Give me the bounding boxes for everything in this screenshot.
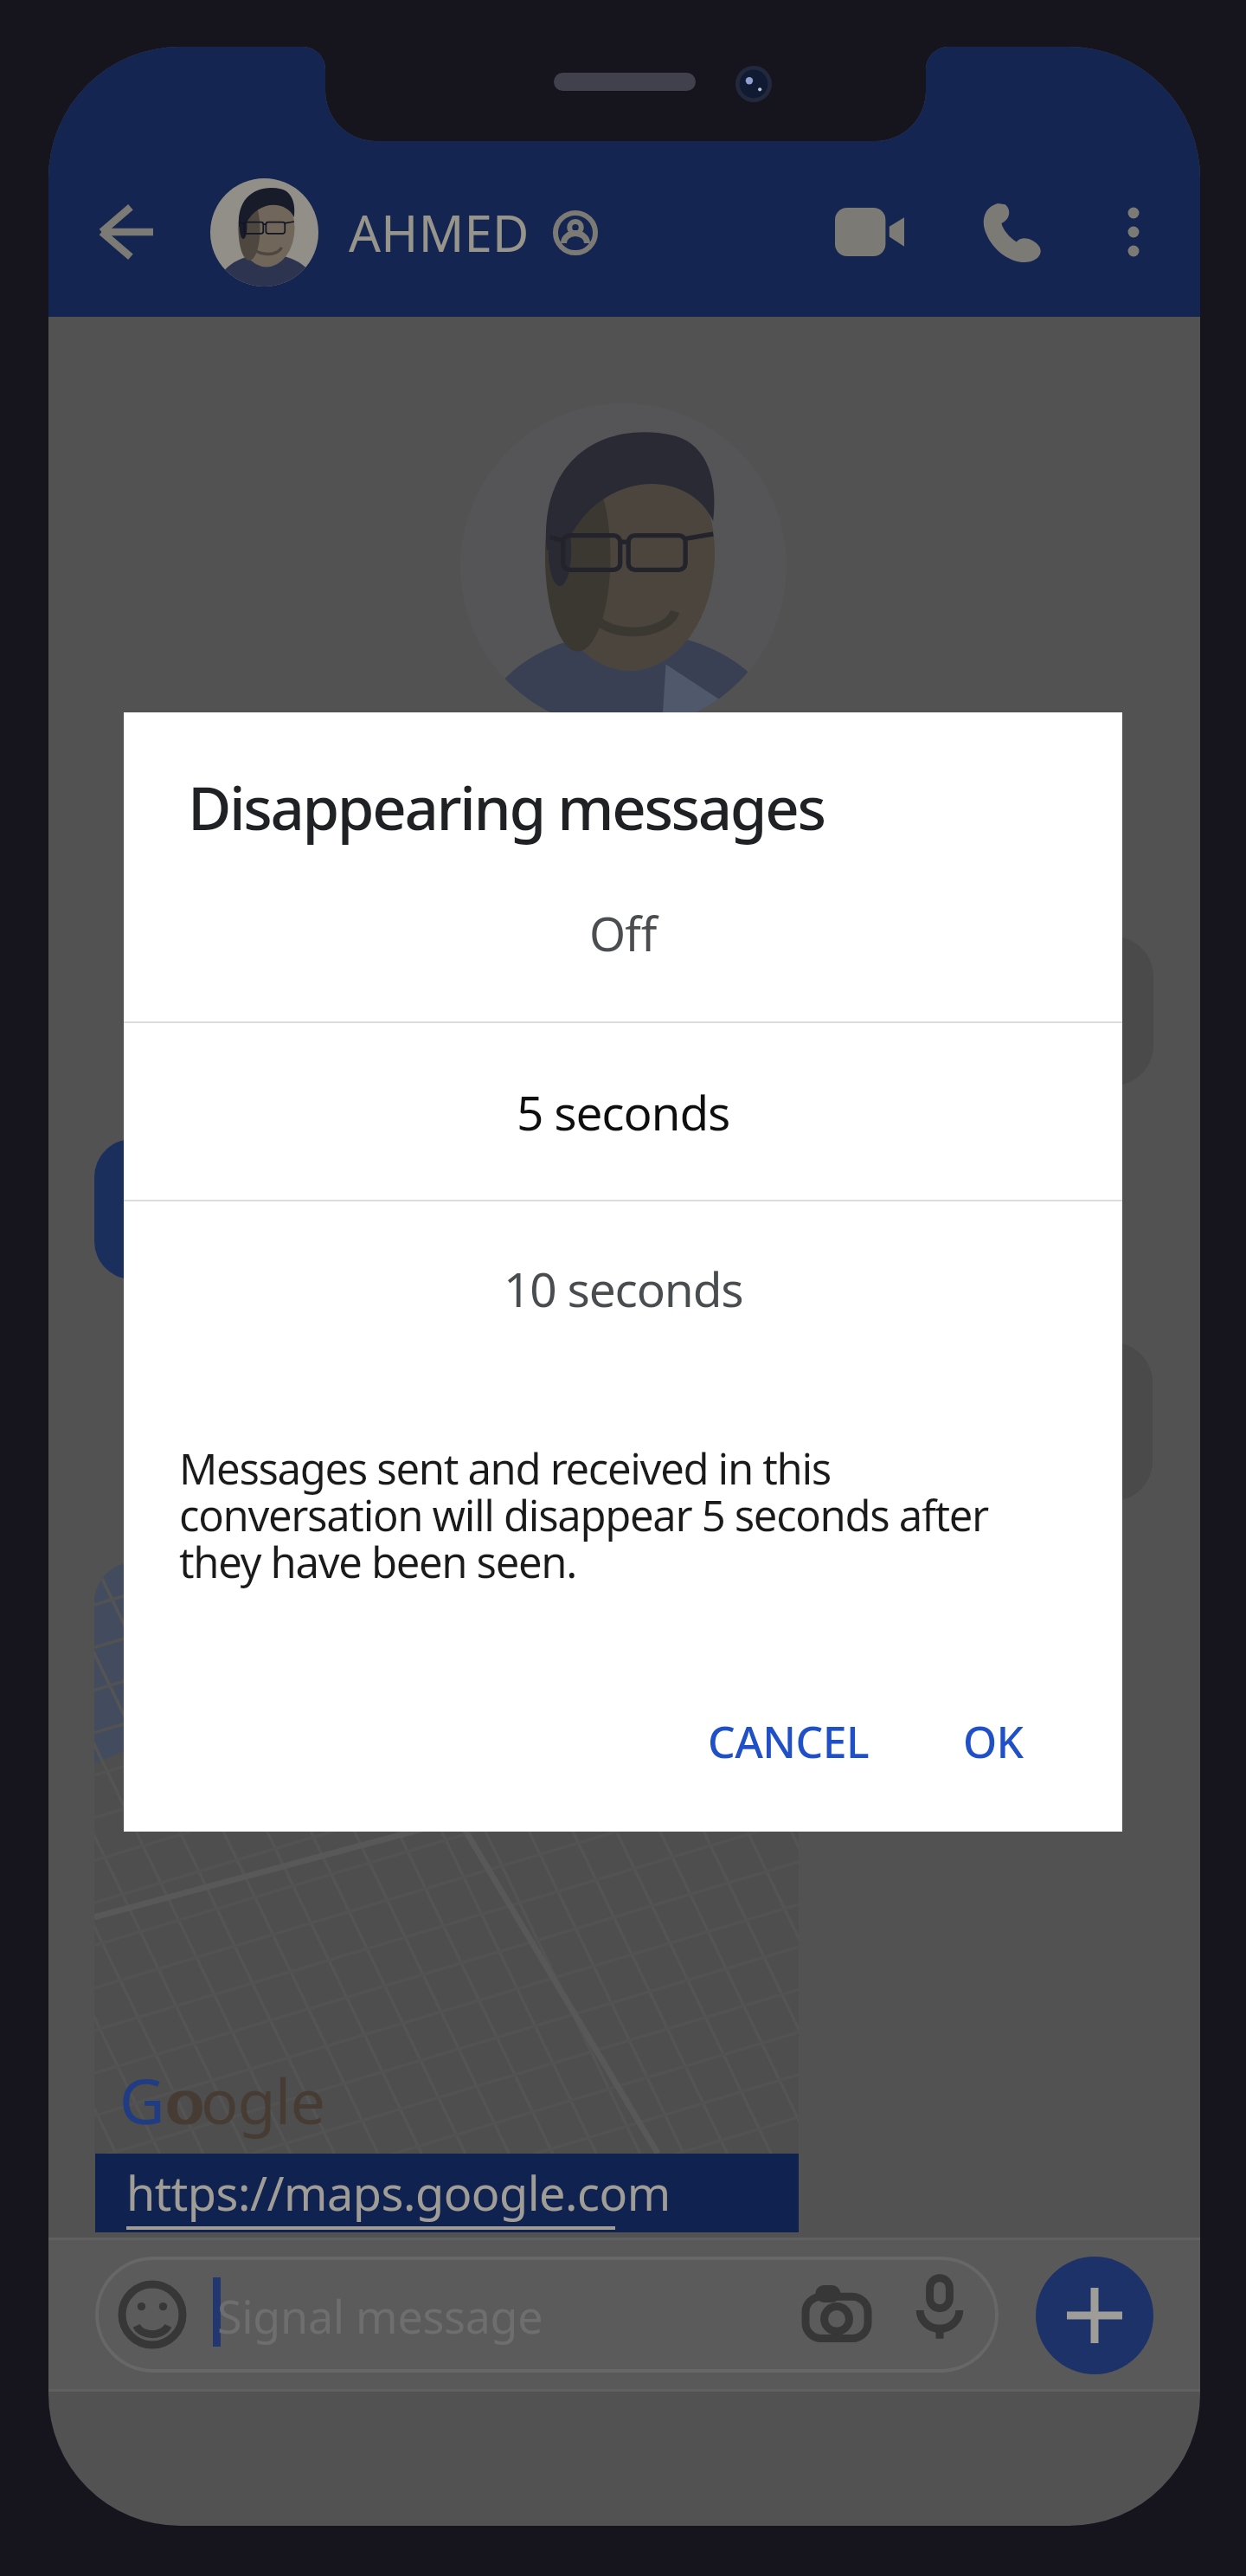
button[interactable]: Back bbox=[79, 184, 174, 280]
staticText: AHMED bbox=[349, 198, 530, 267]
staticText: G bbox=[119, 2058, 165, 2142]
button[interactable]: Add attachment bbox=[1036, 2257, 1153, 2374]
staticText: Messages sent and received in this conve… bbox=[179, 1439, 1023, 1591]
staticText: 5 seconds bbox=[517, 1079, 730, 1144]
staticText: https://maps.google.com bbox=[126, 2161, 671, 2225]
staticText: CANCEL bbox=[708, 1712, 869, 1771]
staticText: 10 seconds bbox=[504, 1256, 743, 1321]
staticText: OK bbox=[963, 1712, 1024, 1771]
staticText: Signal message bbox=[217, 2285, 543, 2347]
button[interactable]: More options bbox=[1086, 184, 1181, 280]
button[interactable]: Voice message bbox=[907, 2275, 973, 2341]
button[interactable]: 5 seconds bbox=[124, 1023, 1122, 1201]
button[interactable]: OK bbox=[927, 1689, 1060, 1794]
button[interactable]: Off bbox=[124, 856, 1122, 1010]
button[interactable]: Camera bbox=[803, 2282, 870, 2349]
staticText: Google bbox=[119, 2058, 325, 2142]
button[interactable]: 10 seconds bbox=[124, 1201, 1122, 1375]
staticText: Disappearing messages bbox=[188, 766, 825, 847]
staticText: o bbox=[119, 2058, 206, 2142]
button[interactable]: Video call bbox=[822, 184, 917, 280]
button[interactable]: CANCEL bbox=[673, 1689, 903, 1794]
button[interactable] bbox=[95, 2257, 999, 2373]
staticText: Off bbox=[589, 901, 657, 965]
button[interactable]: Call bbox=[964, 184, 1059, 280]
